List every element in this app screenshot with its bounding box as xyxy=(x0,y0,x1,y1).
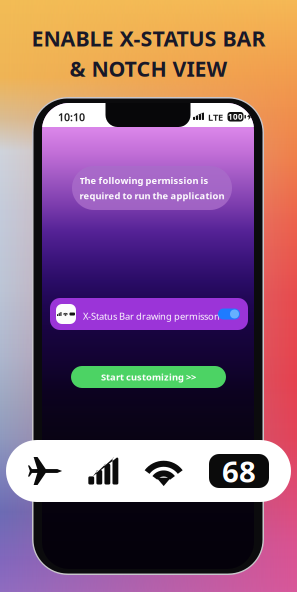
staticText: required to run the application xyxy=(79,189,224,202)
button[interactable]: Start customizing >> xyxy=(71,366,226,388)
staticText: ENABLE X-STATUS BAR xyxy=(31,24,265,52)
staticText: Start customizing >> xyxy=(101,371,196,383)
button[interactable]: X-Status Bar drawing permisson xyxy=(50,298,248,330)
staticText: 68 xyxy=(222,451,256,490)
staticText: 10:10 xyxy=(58,110,85,124)
staticText: X-Status Bar drawing permisson xyxy=(83,310,220,322)
staticText: The following permission is xyxy=(79,174,208,186)
staticText: 100 xyxy=(228,111,243,122)
staticText: & NOTCH VIEW xyxy=(69,54,227,83)
staticText: LTE xyxy=(208,111,223,123)
